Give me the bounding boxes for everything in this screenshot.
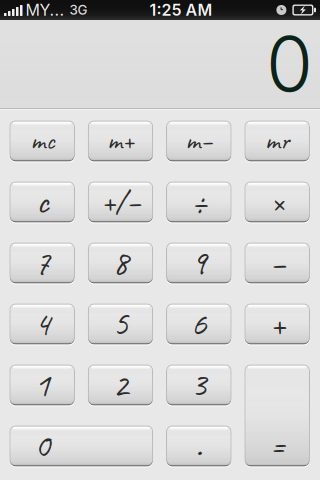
staticText: = bbox=[270, 424, 285, 467]
staticText: mr bbox=[265, 124, 290, 157]
staticText: 5 bbox=[112, 302, 128, 345]
button[interactable]: 4 bbox=[10, 304, 74, 343]
staticText: c bbox=[36, 180, 48, 223]
staticText: 3G bbox=[69, 2, 87, 18]
staticText: 0 bbox=[34, 424, 50, 467]
staticText: +/− bbox=[101, 181, 140, 222]
button[interactable]: 3 bbox=[167, 365, 231, 404]
button[interactable]: . bbox=[167, 426, 231, 465]
button[interactable]: m− bbox=[167, 121, 231, 160]
staticText: MY... bbox=[25, 0, 64, 20]
button[interactable]: mc bbox=[10, 121, 74, 160]
staticText: 4 bbox=[34, 302, 50, 345]
staticText: 2 bbox=[112, 363, 128, 406]
button[interactable]: 9 bbox=[167, 243, 231, 282]
button[interactable]: − bbox=[245, 243, 309, 282]
staticText: − bbox=[270, 241, 285, 284]
button[interactable]: 6 bbox=[167, 304, 231, 343]
staticText: 6 bbox=[191, 302, 207, 345]
staticText: 3 bbox=[191, 363, 207, 406]
button[interactable]: 1 bbox=[10, 365, 74, 404]
staticText: 1:25 AM bbox=[149, 0, 212, 20]
staticText: ÷ bbox=[191, 180, 206, 223]
button[interactable]: m+ bbox=[88, 121, 153, 160]
staticText: 7 bbox=[34, 241, 50, 284]
staticText: 0 bbox=[266, 17, 313, 109]
staticText: . bbox=[195, 424, 202, 467]
button[interactable]: +/− bbox=[88, 182, 153, 221]
staticText: + bbox=[270, 302, 285, 345]
button[interactable]: 7 bbox=[10, 243, 74, 282]
staticText: 9 bbox=[191, 241, 207, 284]
button[interactable]: mr bbox=[245, 121, 309, 160]
button[interactable]: 5 bbox=[88, 304, 153, 343]
button[interactable]: ÷ bbox=[167, 182, 231, 221]
staticText: 8 bbox=[112, 241, 128, 284]
staticText: × bbox=[270, 181, 284, 222]
staticText: m+ bbox=[107, 124, 134, 157]
staticText: mc bbox=[30, 124, 54, 157]
staticText: 1 bbox=[34, 363, 50, 406]
button[interactable]: 8 bbox=[88, 243, 153, 282]
button[interactable]: c bbox=[10, 182, 74, 221]
button[interactable]: × bbox=[245, 182, 309, 221]
button[interactable]: 0 bbox=[10, 426, 153, 465]
staticText: m− bbox=[185, 124, 212, 157]
button[interactable]: = bbox=[245, 365, 309, 465]
button[interactable]: + bbox=[245, 304, 309, 343]
button[interactable]: 2 bbox=[88, 365, 153, 404]
